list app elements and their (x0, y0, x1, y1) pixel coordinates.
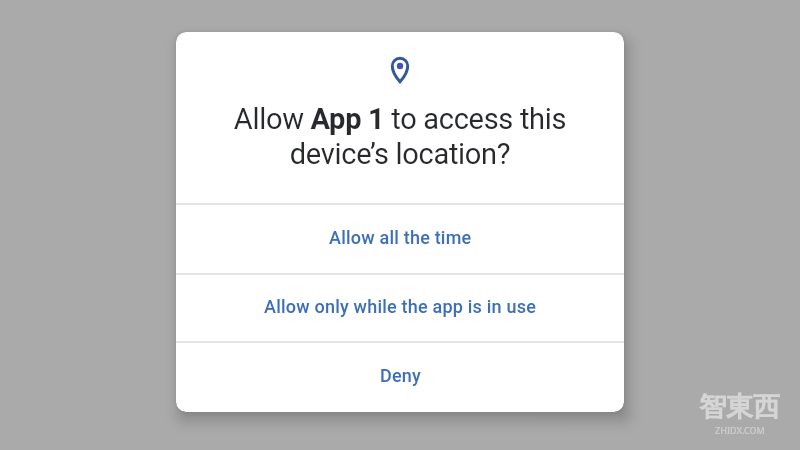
staticText: Allow all the time (329, 227, 472, 248)
button[interactable]: Deny (176, 343, 624, 412)
staticText: ZHIDX.COM (715, 424, 765, 436)
staticText: Allow only while the app is in use (264, 296, 537, 317)
staticText: Allow App 1 to access this device’s loca… (176, 102, 624, 171)
staticText: Deny (380, 365, 421, 386)
staticText: 智東西 (699, 390, 780, 424)
button[interactable]: Allow all the time (176, 205, 624, 273)
button[interactable]: Allow only while the app is in use (176, 275, 624, 341)
